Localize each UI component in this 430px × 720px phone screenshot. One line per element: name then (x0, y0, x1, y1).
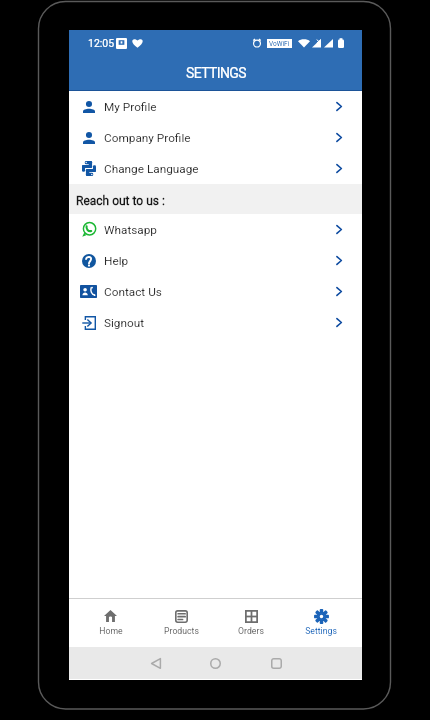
staticText: Whatsapp (104, 223, 157, 237)
other: Home (210, 658, 221, 669)
staticText: Reach out to us : (76, 194, 165, 208)
other: Back (151, 658, 161, 669)
staticText: Products (164, 626, 199, 636)
button[interactable]: Settings (286, 599, 356, 647)
staticText: My Profile (104, 100, 157, 114)
staticText: SETTINGS (186, 65, 246, 81)
staticText: Change Language (104, 162, 199, 176)
other: Alarm (253, 39, 261, 47)
button[interactable]: Whatsapp (69, 214, 362, 245)
button[interactable]: My Profile (69, 91, 362, 122)
staticText: Orders (238, 626, 264, 636)
staticText: Home (99, 626, 123, 636)
staticText: 12:05 (88, 37, 115, 49)
button[interactable]: Help (69, 245, 362, 276)
staticText: Settings (305, 626, 337, 636)
other: Recent apps (271, 658, 282, 669)
button[interactable]: Contact Us (69, 276, 362, 307)
button[interactable]: Products (146, 599, 216, 647)
staticText: Contact Us (104, 285, 162, 299)
button[interactable]: Home (75, 599, 146, 647)
staticText: VoWiFi (269, 40, 290, 48)
staticText: Help (104, 254, 129, 268)
button[interactable]: Change Language (69, 153, 362, 184)
button[interactable]: Company Profile (69, 122, 362, 153)
button[interactable]: Orders (216, 599, 286, 647)
staticText: Company Profile (104, 131, 191, 145)
button[interactable]: Signout (69, 307, 362, 338)
staticText: Signout (104, 316, 145, 330)
